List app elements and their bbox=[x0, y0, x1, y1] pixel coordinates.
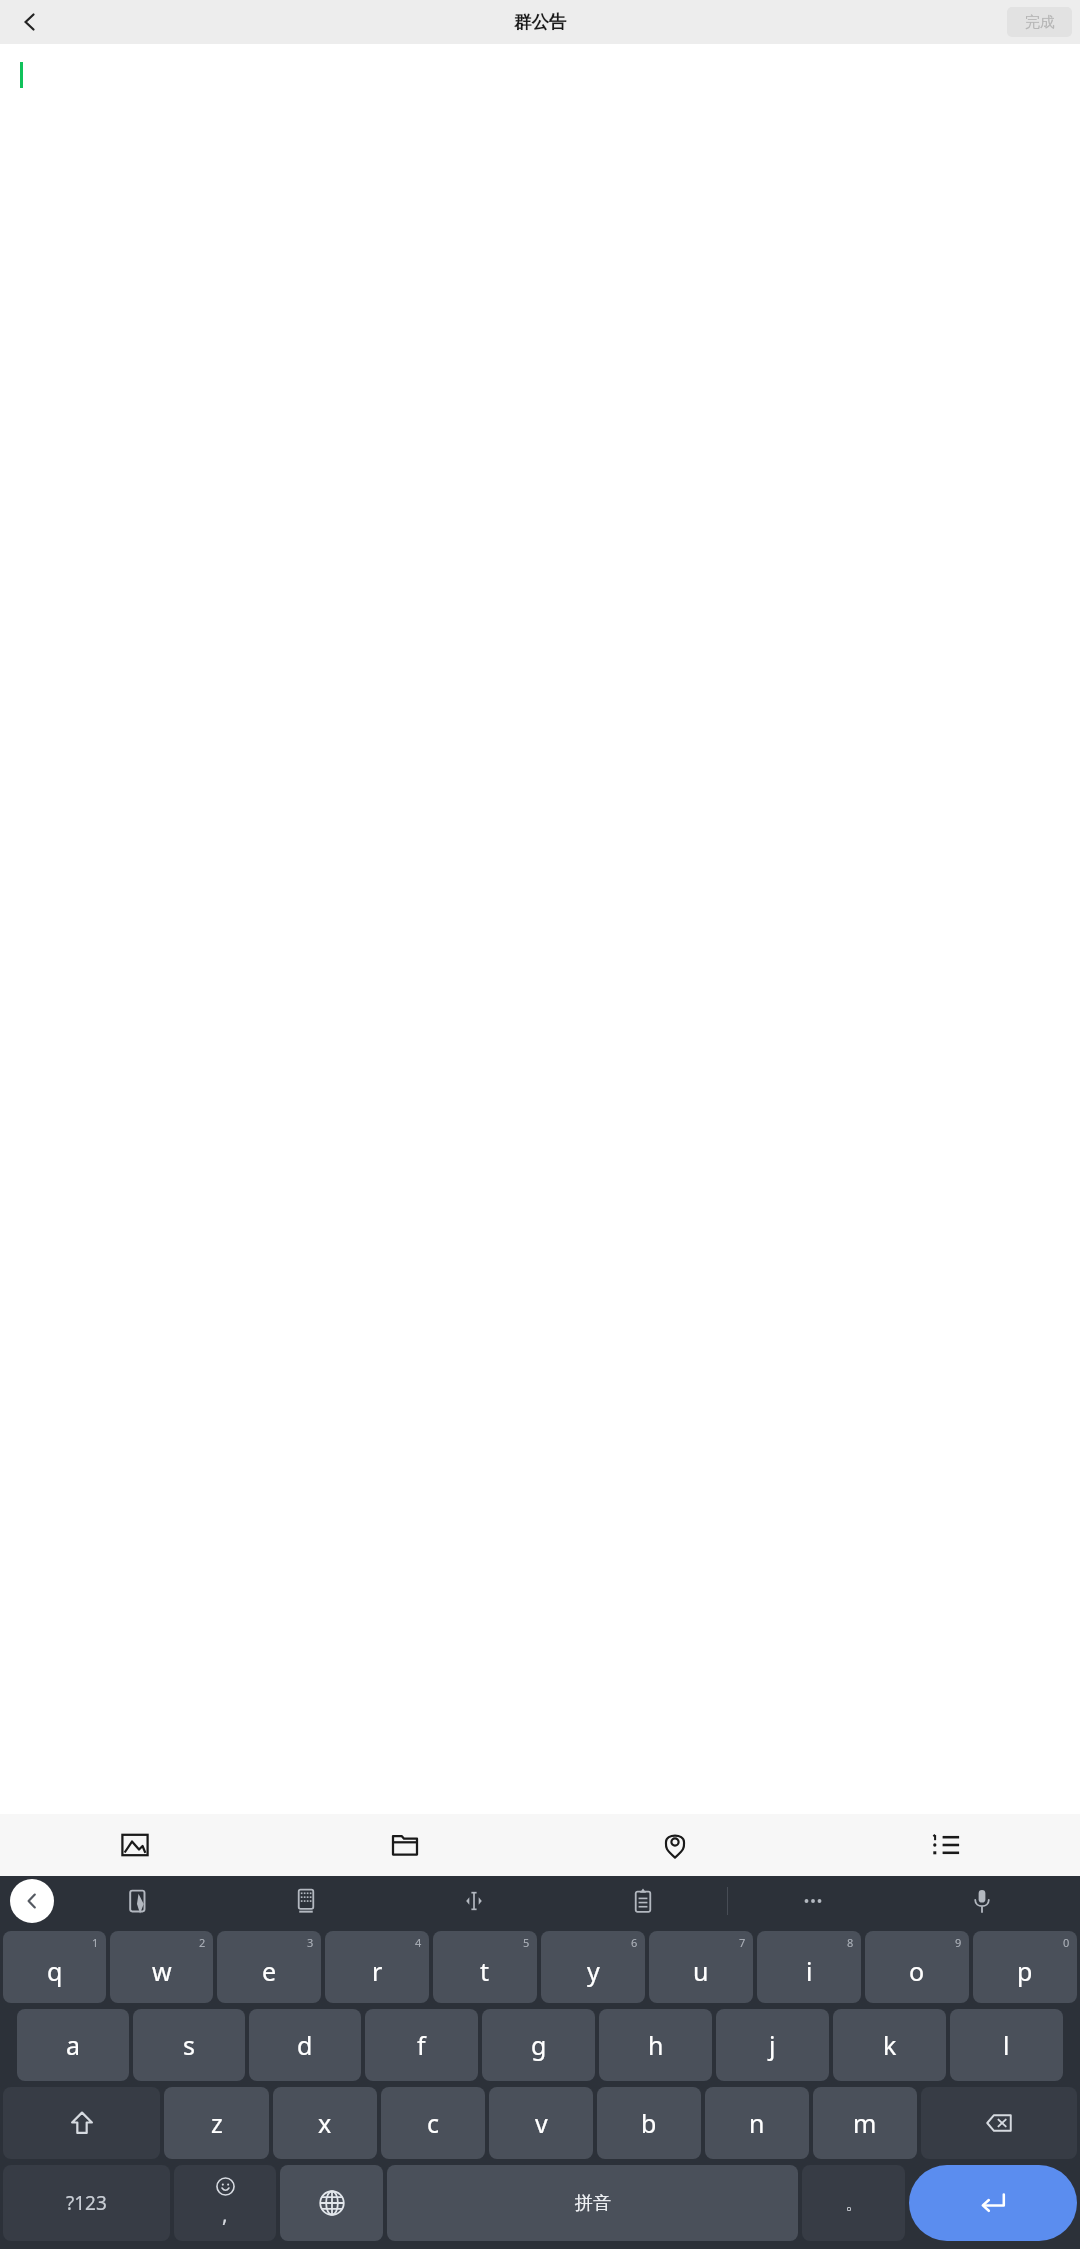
staticText: u bbox=[693, 1954, 709, 1988]
staticText: 拼音 bbox=[575, 2192, 611, 2215]
staticText: e bbox=[262, 1954, 277, 1988]
button[interactable]: n bbox=[705, 2087, 809, 2159]
staticText: r bbox=[372, 1954, 383, 1988]
staticText: w bbox=[152, 1954, 172, 1988]
button[interactable]: x bbox=[273, 2087, 377, 2159]
button[interactable]: 。 bbox=[802, 2165, 905, 2241]
staticText: 9 bbox=[955, 1935, 962, 1950]
button[interactable]: m bbox=[813, 2087, 917, 2159]
staticText: g bbox=[531, 2028, 547, 2062]
button[interactable]: ?123 bbox=[3, 2165, 170, 2241]
button[interactable]: Location bbox=[540, 1814, 810, 1876]
staticText: t bbox=[480, 1954, 490, 1988]
button[interactable]: s bbox=[133, 2009, 245, 2081]
staticText: 2 bbox=[199, 1935, 206, 1950]
button[interactable]: d bbox=[249, 2009, 361, 2081]
button[interactable]: 1 bbox=[3, 1931, 106, 2003]
staticText: q bbox=[47, 1954, 63, 1988]
button[interactable]: Clipboard bbox=[558, 1876, 727, 1926]
button[interactable]: List bbox=[810, 1814, 1080, 1876]
staticText: , bbox=[222, 2200, 228, 2229]
button[interactable]: 完成 bbox=[1007, 7, 1072, 37]
button[interactable]: 2 bbox=[110, 1931, 213, 2003]
staticText: k bbox=[883, 2028, 897, 2062]
staticText: h bbox=[648, 2028, 664, 2062]
staticText: l bbox=[1003, 2028, 1010, 2062]
staticText: 完成 bbox=[1025, 13, 1055, 32]
staticText: b bbox=[641, 2106, 657, 2140]
staticText: 1 bbox=[92, 1935, 99, 1950]
staticText: n bbox=[749, 2106, 765, 2140]
button[interactable]: Collapse bbox=[10, 1879, 54, 1923]
staticText: s bbox=[183, 2028, 195, 2062]
button[interactable]: Enter bbox=[909, 2165, 1077, 2241]
button[interactable]: a bbox=[17, 2009, 129, 2081]
button[interactable]: 0 bbox=[973, 1931, 1077, 2003]
button[interactable]: Handwriting bbox=[54, 1876, 222, 1926]
staticText: f bbox=[417, 2028, 426, 2062]
staticText: j bbox=[769, 2028, 776, 2062]
button[interactable]: Back bbox=[6, 0, 54, 44]
button[interactable]: z bbox=[164, 2087, 269, 2159]
staticText: ?123 bbox=[66, 2190, 107, 2216]
button[interactable]: f bbox=[365, 2009, 478, 2081]
button[interactable]: l bbox=[950, 2009, 1063, 2081]
staticText: 0 bbox=[1063, 1935, 1070, 1950]
button[interactable]: v bbox=[489, 2087, 593, 2159]
staticText: i bbox=[806, 1954, 813, 1988]
staticText: a bbox=[66, 2028, 81, 2062]
staticText: 7 bbox=[739, 1935, 746, 1950]
button[interactable]: Keyboard layout bbox=[222, 1876, 390, 1926]
button[interactable]: 拼音 bbox=[387, 2165, 798, 2241]
staticText: v bbox=[535, 2106, 548, 2140]
button[interactable]: Change language bbox=[280, 2165, 383, 2241]
button[interactable]: 3 bbox=[217, 1931, 321, 2003]
staticText: 8 bbox=[847, 1935, 854, 1950]
button[interactable]: j bbox=[716, 2009, 829, 2081]
button[interactable]: Emoji and comma bbox=[174, 2165, 276, 2241]
button[interactable]: Voice input bbox=[897, 1876, 1066, 1926]
button[interactable]: 5 bbox=[433, 1931, 537, 2003]
button[interactable]: 8 bbox=[757, 1931, 861, 2003]
staticText: d bbox=[297, 2028, 313, 2062]
button[interactable]: 7 bbox=[649, 1931, 753, 2003]
button[interactable]: Files bbox=[270, 1814, 540, 1876]
staticText: 4 bbox=[415, 1935, 422, 1950]
button[interactable]: Insert image bbox=[0, 1814, 270, 1876]
button[interactable]: 6 bbox=[541, 1931, 645, 2003]
button[interactable]: 4 bbox=[325, 1931, 429, 2003]
button[interactable]: More bbox=[728, 1876, 897, 1926]
button[interactable]: g bbox=[482, 2009, 595, 2081]
staticText: z bbox=[211, 2106, 223, 2140]
staticText: 6 bbox=[631, 1935, 638, 1950]
button[interactable]: 9 bbox=[865, 1931, 969, 2003]
staticText: 3 bbox=[307, 1935, 314, 1950]
button[interactable]: Move cursor bbox=[390, 1876, 558, 1926]
staticText: 。 bbox=[845, 2192, 863, 2215]
button[interactable]: c bbox=[381, 2087, 485, 2159]
staticText: 5 bbox=[523, 1935, 530, 1950]
button[interactable]: k bbox=[833, 2009, 946, 2081]
button[interactable]: Backspace bbox=[921, 2087, 1077, 2159]
staticText: y bbox=[587, 1954, 600, 1988]
staticText: m bbox=[853, 2106, 877, 2140]
staticText: 群公告 bbox=[514, 11, 567, 33]
staticText: x bbox=[318, 2106, 332, 2140]
button[interactable]: Shift bbox=[3, 2087, 160, 2159]
button[interactable]: h bbox=[599, 2009, 712, 2081]
staticText: o bbox=[909, 1954, 925, 1988]
staticText: c bbox=[427, 2106, 440, 2140]
button[interactable]: b bbox=[597, 2087, 701, 2159]
staticText: p bbox=[1017, 1954, 1033, 1988]
